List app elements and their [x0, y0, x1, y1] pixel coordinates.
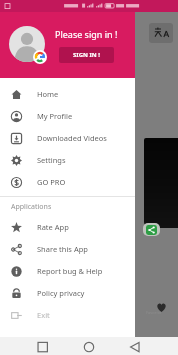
- staticText: GO PRO: [37, 177, 66, 187]
- staticText: My Profile: [37, 111, 73, 121]
- staticText: Downloaded Videos: [37, 133, 107, 143]
- button[interactable]: Report bug & Help: [0, 260, 135, 282]
- staticText: SIGN IN !: [73, 51, 100, 59]
- button[interactable]: Favorite: [152, 298, 170, 316]
- staticText: Rate App: [37, 222, 69, 232]
- staticText: Exit: [37, 310, 50, 320]
- button[interactable]: GO PRO: [0, 171, 135, 193]
- button[interactable]: Home: [0, 83, 135, 105]
- button[interactable]: My Profile: [0, 105, 135, 127]
- button[interactable]: Translate: [149, 23, 173, 43]
- button[interactable]: Policy privacy: [0, 282, 135, 304]
- button[interactable]: SIGN IN !: [59, 47, 114, 63]
- staticText: Share this App: [37, 244, 88, 254]
- staticText: Please sign in !: [55, 28, 118, 40]
- button[interactable]: Settings: [0, 149, 135, 171]
- button[interactable]: Downloaded Videos: [0, 127, 135, 149]
- button[interactable]: Exit: [0, 304, 135, 326]
- button[interactable]: Share this App: [0, 238, 135, 260]
- staticText: Report bug & Help: [37, 266, 103, 276]
- staticText: Policy privacy: [37, 288, 85, 298]
- button[interactable]: Share to WhatsApp: [143, 223, 160, 236]
- staticText: Home: [37, 89, 59, 99]
- staticText: Applications: [11, 202, 52, 212]
- staticText: Settings: [37, 155, 66, 165]
- button[interactable]: Rate App: [0, 216, 135, 238]
- staticText: Favorite: [146, 310, 162, 315]
